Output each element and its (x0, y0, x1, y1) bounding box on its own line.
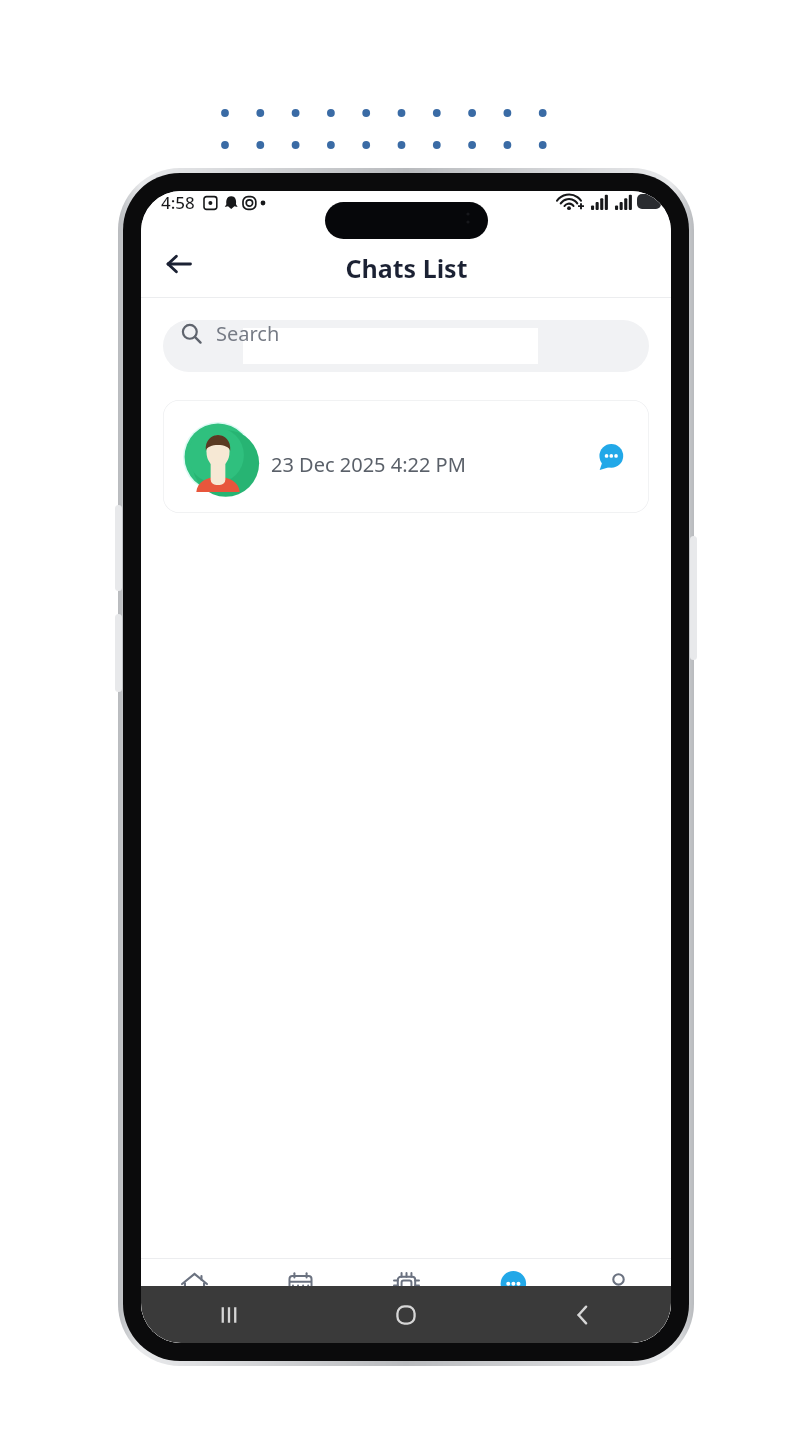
staticText: Chats List (345, 251, 468, 285)
button[interactable]: Appointm… (247, 1259, 353, 1327)
staticText: My Devices (367, 1307, 446, 1327)
button[interactable]: Chats (459, 1259, 565, 1327)
button[interactable]: Profile (565, 1259, 671, 1327)
button[interactable]: Home (141, 1259, 247, 1327)
staticText: 4:58 (161, 191, 195, 214)
staticText: 23 Dec 2025 4:22 PM (271, 451, 466, 478)
button[interactable]: 23 Dec 2025 4:22 PM (163, 400, 649, 513)
button[interactable]: Back (151, 236, 207, 292)
button[interactable]: My Devices (353, 1259, 459, 1327)
button[interactable]: Search (163, 320, 649, 372)
button[interactable]: Open chat (591, 438, 629, 476)
staticText: Search (216, 320, 280, 347)
